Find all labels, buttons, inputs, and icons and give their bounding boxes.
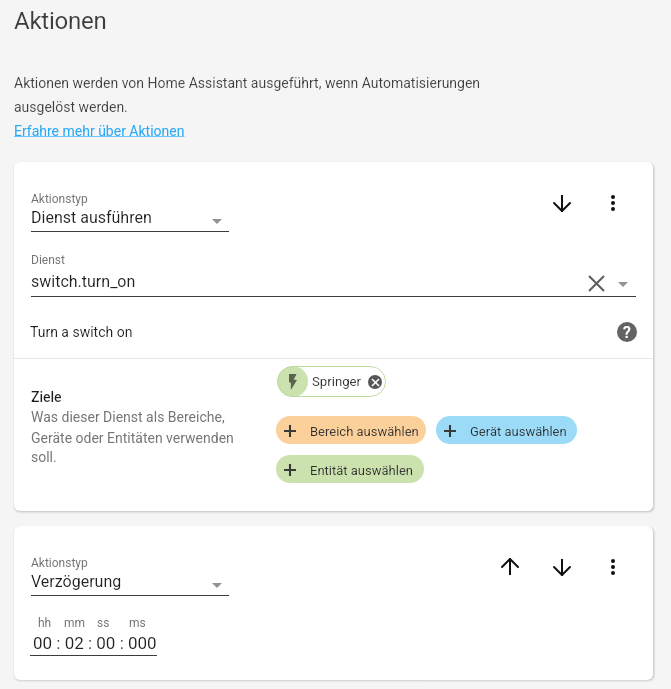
staticText: ausgelöst werden.: [14, 99, 128, 115]
button[interactable]: Select action type: [205, 209, 229, 233]
staticText: Aktionen: [14, 7, 107, 35]
button[interactable]: Remove Springer: [368, 375, 382, 389]
button[interactable]: Select action type: [205, 573, 229, 597]
staticText: Aktionstyp: [31, 556, 88, 570]
staticText: Dienst: [31, 253, 65, 267]
staticText: Aktionstyp: [31, 192, 88, 206]
staticText: Springer: [312, 374, 362, 389]
staticText: Turn a switch on: [30, 324, 133, 340]
button[interactable]: Show service options: [611, 272, 635, 296]
staticText: Bereich auswählen: [310, 424, 419, 439]
staticText: switch.turn_on: [31, 272, 136, 291]
button[interactable]: Clear: [583, 270, 609, 296]
button[interactable]: Entität auswählen: [276, 455, 424, 483]
staticText: Entität auswählen: [310, 463, 413, 478]
button[interactable]: Move up: [493, 550, 527, 584]
staticText: soll.: [31, 449, 57, 465]
staticText: ss: [97, 616, 110, 630]
staticText: Verzögerung: [31, 572, 122, 591]
button[interactable]: Erfahre mehr über Aktionen: [0, 0, 171, 16]
button[interactable]: More options: [596, 186, 630, 220]
staticText: ms: [129, 616, 146, 630]
button[interactable]: Springer: [277, 366, 386, 397]
staticText: 00 : 02 : 00 : 000: [33, 633, 157, 653]
button[interactable]: Bereich auswählen: [276, 416, 426, 444]
staticText: Gerät auswählen: [470, 424, 567, 439]
staticText: ?: [623, 323, 631, 342]
staticText: hh: [38, 616, 52, 630]
staticText: Geräte oder Entitäten verwenden: [31, 430, 234, 446]
button[interactable]: Move down: [545, 186, 579, 220]
button[interactable]: More options: [596, 550, 630, 584]
staticText: Dienst ausführen: [31, 208, 152, 227]
button[interactable]: Help: [610, 315, 644, 349]
button[interactable]: Gerät auswählen: [436, 416, 577, 444]
button[interactable]: Move down: [545, 550, 579, 584]
staticText: mm: [64, 616, 86, 630]
staticText: Was dieser Dienst als Bereiche,: [31, 409, 225, 425]
staticText: Aktionen werden von Home Assistant ausge…: [14, 75, 481, 91]
staticText: Ziele: [31, 389, 62, 405]
